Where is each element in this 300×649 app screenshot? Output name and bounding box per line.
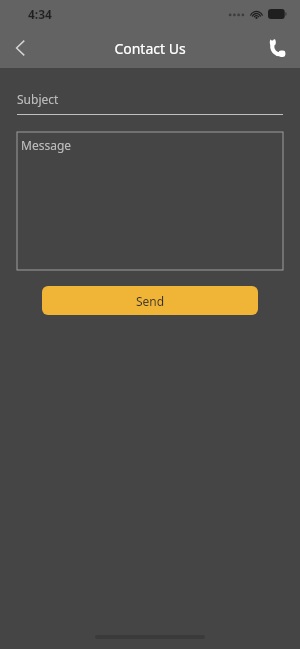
- staticText: Subject: [17, 91, 59, 107]
- staticText: 4:34: [28, 6, 52, 22]
- button[interactable]: Call: [256, 28, 300, 68]
- staticText: Message: [21, 137, 72, 153]
- button[interactable]: Back: [0, 28, 40, 68]
- staticText: Send: [136, 293, 165, 309]
- button[interactable]: Message: [17, 132, 283, 270]
- button[interactable]: Send: [42, 286, 258, 315]
- button[interactable]: Subject: [17, 91, 283, 115]
- staticText: Contact Us: [114, 39, 186, 58]
